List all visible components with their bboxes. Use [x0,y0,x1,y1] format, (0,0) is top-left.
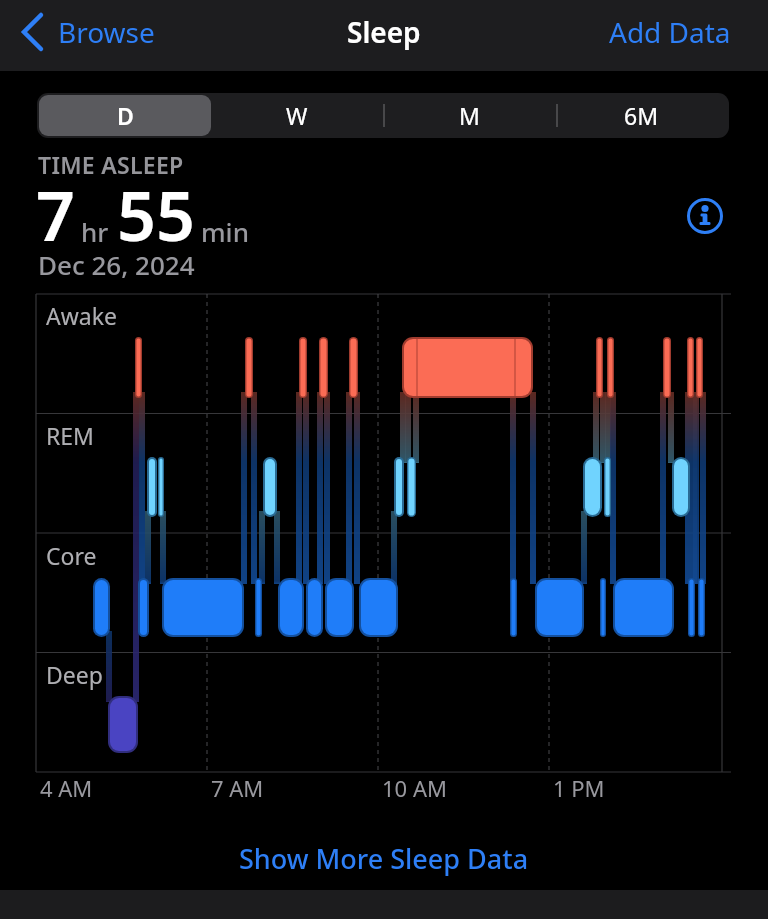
button[interactable]: M [383,95,555,136]
staticText: 55 [117,168,195,261]
staticText: 4 AM [40,773,93,803]
button[interactable]: D [39,95,211,136]
button[interactable]: Browse [20,12,155,52]
staticText: min [201,214,249,249]
staticText: Sleep [347,13,421,51]
staticText: 6M [624,100,659,131]
staticText: Deep [46,659,103,690]
button[interactable]: 6M [555,95,727,136]
staticText: Show More Sleep Data [239,840,529,877]
button[interactable]: Add Data [609,13,731,51]
staticText: D [117,100,134,131]
staticText: Core [46,540,97,571]
staticText: hr [81,214,109,249]
staticText: 10 AM [382,773,447,803]
button[interactable] [685,196,725,236]
staticText: Awake [46,300,117,331]
button[interactable]: W [211,95,383,136]
staticText: M [459,100,480,131]
staticText: W [286,100,308,131]
staticText: 7 AM [211,773,264,803]
staticText: TIME ASLEEP [38,149,184,180]
staticText: Browse [58,13,155,51]
button[interactable]: Show More Sleep Data [239,840,529,877]
staticText: 1 PM [553,773,605,803]
staticText: Dec 26, 2024 [38,247,195,282]
staticText: REM [46,420,94,451]
staticText: Add Data [609,13,731,51]
staticText: 7 [36,168,75,261]
